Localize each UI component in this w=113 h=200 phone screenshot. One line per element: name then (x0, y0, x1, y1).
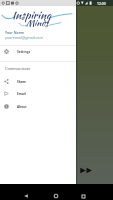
staticText: Settings (17, 50, 31, 54)
staticText: Email (17, 92, 26, 96)
button[interactable]: Settings (0, 45, 76, 58)
staticText: Communicate (5, 66, 31, 71)
button[interactable]: Fast forward (78, 165, 94, 175)
staticText: Minds (26, 16, 49, 29)
button[interactable]: Back (17, 184, 34, 200)
staticText: youremail@gmail.com (5, 35, 43, 40)
staticText: About (17, 105, 27, 109)
staticText: Inspiring (12, 7, 52, 23)
button[interactable]: Home (47, 184, 64, 200)
staticText: 12:00 (97, 1, 106, 6)
staticText: Share (17, 80, 27, 84)
button[interactable]: Email (0, 87, 76, 100)
staticText: Your Name (5, 30, 25, 35)
button[interactable]: About (0, 100, 76, 113)
button[interactable]: Recent apps (75, 184, 92, 200)
button[interactable]: Share (0, 75, 76, 88)
